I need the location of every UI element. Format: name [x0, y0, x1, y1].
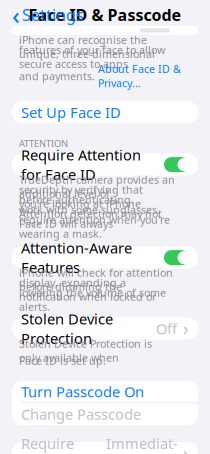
- staticText: ›: [183, 442, 189, 454]
- staticText: Stolen Device Protection is only availab…: [19, 336, 152, 365]
- staticText: work with some sunglasses. Face ID will …: [19, 202, 160, 231]
- staticText: Turn Passcode On: [21, 382, 144, 401]
- staticText: iPhone can recognise the unique, three-d…: [19, 33, 155, 61]
- staticText: Require Attention for Face ID: [21, 145, 141, 184]
- staticText: and payments.: [19, 69, 98, 83]
- staticText: features of your face to allow secure ac…: [19, 43, 165, 71]
- staticText: Face ID & Passcode: [28, 4, 181, 25]
- button[interactable]: Set Up Face ID: [12, 101, 198, 123]
- button[interactable]: Turn Passcode On: [12, 381, 198, 403]
- staticText: Immediately: [106, 434, 178, 454]
- button[interactable]: Change Passcode: [12, 403, 198, 425]
- button[interactable]: Require Passcode: [12, 442, 198, 454]
- button[interactable]: Attention-Aware Features: [12, 247, 198, 269]
- staticText: ATTENTION: [19, 137, 68, 150]
- staticText: Stolen Device Protection: [21, 309, 113, 348]
- staticText: Attention-Aware Features: [21, 238, 132, 277]
- staticText: lowering the volume of some alerts.: [19, 285, 166, 314]
- staticText: ›: [183, 317, 189, 340]
- staticText: Settings: [22, 4, 84, 25]
- staticText: TrueDepth camera provides an additional …: [19, 172, 175, 201]
- button[interactable]: ‹: [8, 3, 88, 27]
- button[interactable]: Stolen Device Protection: [12, 318, 198, 340]
- staticText: Face ID is set up.: [19, 353, 106, 368]
- button[interactable]: About Face ID & Privacy...: [98, 62, 181, 90]
- staticText: Change Passcode: [21, 404, 141, 424]
- staticText: before authenticating. Attention detecti…: [19, 192, 162, 221]
- staticText: require attention when you're wearing a …: [19, 212, 170, 241]
- staticText: display, expanding a notification when l…: [19, 275, 156, 304]
- staticText: Off: [156, 319, 177, 338]
- staticText: Set Up Face ID: [21, 102, 121, 122]
- staticText: About Face ID & Privacy...: [98, 62, 181, 90]
- staticText: security by verifying that you're lookin…: [19, 182, 143, 211]
- staticText: ‹: [12, 0, 20, 31]
- staticText: Require Passcode: [21, 434, 85, 454]
- staticText: iPhone will check for attention before d…: [19, 265, 173, 294]
- button[interactable]: Require Attention for Face ID: [12, 154, 198, 176]
